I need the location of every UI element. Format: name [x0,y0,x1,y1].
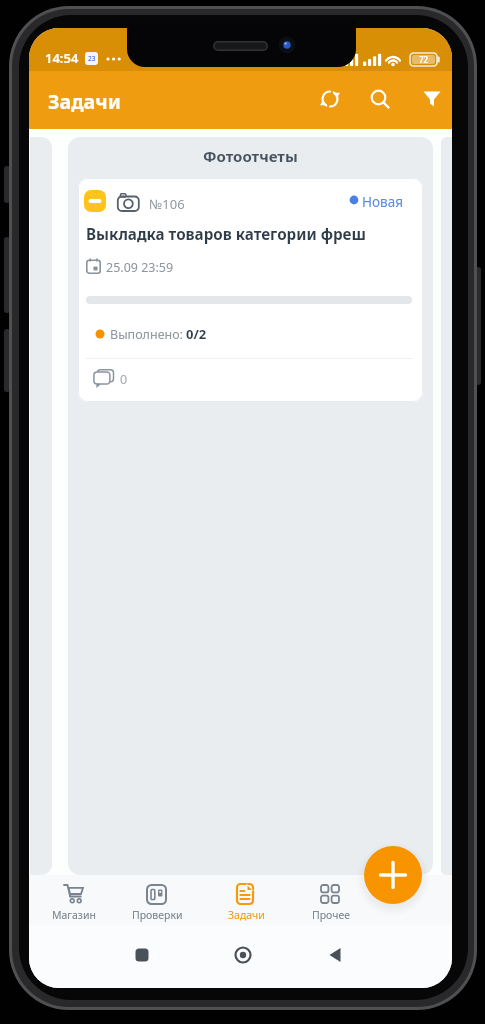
staticText: Новая [362,193,403,211]
button[interactable]: Прочее [304,877,358,923]
staticText: 25.09 23:59 [106,259,174,276]
button[interactable] [322,942,348,968]
staticText: 0 [120,371,128,388]
staticText: Прочее [312,908,350,922]
button[interactable]: №106 [78,178,423,402]
staticText: №106 [149,195,185,213]
staticText: 23 [88,54,96,63]
staticText: 14:54 [45,49,79,67]
staticText: Магазин [52,908,96,922]
button[interactable]: Задачи [219,877,273,923]
button[interactable] [421,88,443,110]
staticText: Задачи [228,908,265,922]
button[interactable] [364,846,422,904]
staticText: Выкладка товаров категории фреш [86,224,366,245]
staticText: Проверки [132,908,183,922]
staticText: 0/2 [186,325,207,343]
staticText: Фотоотчеты [203,146,298,166]
button[interactable] [319,88,341,110]
button[interactable]: Проверки [128,877,186,923]
button[interactable]: Магазин [46,877,102,923]
button[interactable] [369,88,391,110]
button[interactable] [230,942,256,968]
staticText: Выполнено: [110,326,187,343]
button[interactable] [129,942,155,968]
staticText: Задачи [48,88,121,115]
staticText: 72 [419,54,429,65]
